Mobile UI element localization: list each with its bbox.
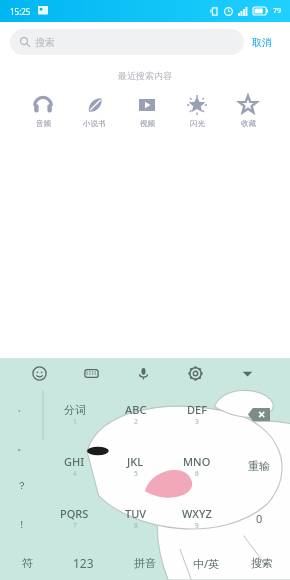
button[interactable]: 0 bbox=[228, 492, 290, 544]
button[interactable]: 、 bbox=[0, 388, 44, 427]
button[interactable]: 闪光 bbox=[183, 91, 211, 132]
staticText: 15:25 bbox=[10, 6, 31, 17]
staticText: ABC bbox=[125, 402, 147, 417]
staticText: 5 bbox=[134, 469, 138, 478]
staticText: 最近搜索内容 bbox=[0, 70, 290, 81]
button[interactable]: MNO bbox=[166, 440, 228, 492]
staticText: 符 bbox=[22, 556, 33, 570]
button[interactable]: 123 bbox=[55, 546, 111, 580]
staticText: 闪光 bbox=[190, 119, 205, 128]
button[interactable]: 小说书 bbox=[79, 91, 110, 132]
staticText: 收藏 bbox=[241, 119, 256, 128]
button[interactable]: 音频 bbox=[29, 91, 57, 132]
button[interactable]: Emoji bbox=[26, 360, 52, 386]
staticText: 小说书 bbox=[83, 119, 106, 128]
staticText: 1 bbox=[73, 417, 77, 426]
button[interactable]: DEF bbox=[166, 388, 228, 440]
staticText: 7 bbox=[73, 521, 77, 530]
staticText: MNO bbox=[183, 454, 211, 469]
staticText: 搜索 bbox=[35, 36, 55, 49]
button[interactable]: 符 bbox=[0, 546, 55, 580]
staticText: ！ bbox=[17, 518, 27, 531]
button[interactable]: WXYZ bbox=[166, 492, 228, 544]
staticText: 拼音 bbox=[134, 556, 156, 570]
staticText: 重输 bbox=[248, 459, 270, 473]
staticText: PQRS bbox=[60, 506, 89, 521]
staticText: 音频 bbox=[36, 119, 51, 128]
staticText: GHI bbox=[64, 454, 85, 469]
staticText: 搜索 bbox=[251, 556, 273, 570]
button[interactable]: 中/英 bbox=[178, 546, 234, 580]
staticText: 6 bbox=[195, 469, 199, 478]
button[interactable]: 取消 bbox=[244, 32, 280, 53]
button[interactable]: Voice input bbox=[130, 360, 156, 386]
button[interactable]: ABC bbox=[105, 388, 166, 440]
button[interactable]: 视频 bbox=[133, 91, 161, 132]
staticText: 分词 bbox=[64, 403, 86, 417]
staticText: 8 bbox=[134, 521, 138, 530]
staticText: 中/英 bbox=[193, 556, 220, 571]
button[interactable]: PQRS bbox=[44, 492, 105, 544]
button[interactable]: TUV bbox=[105, 492, 166, 544]
staticText: 123 bbox=[73, 555, 94, 571]
staticText: JKL bbox=[127, 454, 144, 469]
staticText: 9 bbox=[195, 521, 199, 530]
button[interactable]: 分词 bbox=[44, 388, 105, 440]
button[interactable]: Delete bbox=[228, 388, 290, 440]
button[interactable]: Hide keyboard bbox=[234, 360, 260, 386]
staticText: 、 bbox=[17, 401, 27, 414]
button[interactable]: 拼音 bbox=[111, 546, 178, 580]
staticText: DEF bbox=[187, 402, 207, 417]
staticText: 79 bbox=[273, 6, 282, 16]
staticText: 。 bbox=[17, 440, 27, 453]
button[interactable]: GHI bbox=[44, 440, 105, 492]
staticText: TUV bbox=[125, 506, 147, 521]
button[interactable]: 重输 bbox=[228, 440, 290, 492]
button[interactable]: Keyboard layout bbox=[78, 360, 104, 386]
staticText: 0 bbox=[256, 511, 263, 526]
button[interactable]: JKL bbox=[105, 440, 166, 492]
button[interactable]: 搜索 bbox=[10, 29, 244, 55]
button[interactable]: 。 bbox=[0, 427, 44, 466]
staticText: 取消 bbox=[252, 36, 272, 49]
staticText: 2 bbox=[134, 417, 138, 426]
staticText: WXYZ bbox=[182, 506, 212, 521]
button[interactable]: 收藏 bbox=[234, 91, 262, 132]
staticText: ？ bbox=[17, 479, 27, 492]
button[interactable]: Settings bbox=[182, 360, 208, 386]
button[interactable]: 搜索 bbox=[234, 546, 290, 580]
staticText: 3 bbox=[195, 417, 199, 426]
button[interactable]: ！ bbox=[0, 505, 44, 544]
staticText: 视频 bbox=[140, 119, 155, 128]
staticText: 4 bbox=[73, 469, 77, 478]
button[interactable]: ？ bbox=[0, 466, 44, 505]
